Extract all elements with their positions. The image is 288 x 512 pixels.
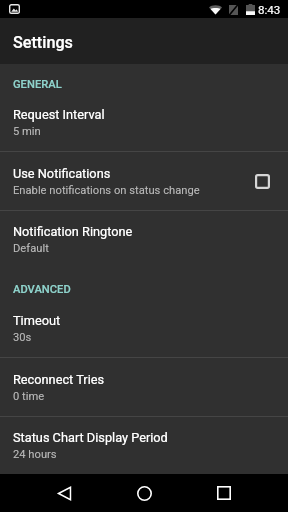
staticText: Notification Ringtone — [13, 224, 133, 239]
button[interactable]: Settings — [0, 18, 288, 64]
staticText: 30s — [13, 331, 32, 344]
staticText: Settings — [13, 33, 73, 52]
staticText: Default — [13, 242, 49, 255]
button[interactable]: Timeout — [0, 298, 288, 358]
staticText: Enable notifications on status change — [13, 184, 200, 197]
button[interactable]: Use Notifications toggle — [249, 169, 275, 195]
staticText: 8:43 — [258, 3, 281, 17]
button[interactable]: Reconnect Tries — [0, 358, 288, 417]
staticText: 5 min — [13, 125, 41, 138]
staticText: ADVANCED — [13, 283, 71, 296]
button[interactable]: Back — [32, 474, 96, 512]
button[interactable]: Use Notifications — [0, 152, 288, 211]
staticText: Reconnect Tries — [13, 372, 105, 387]
button[interactable]: Request Interval — [0, 93, 288, 152]
staticText: Request Interval — [13, 107, 105, 122]
button[interactable]: Status Chart Display Period — [0, 416, 288, 474]
staticText: 24 hours — [13, 448, 57, 461]
staticText: 0 time — [13, 390, 45, 403]
staticText: Status Chart Display Period — [13, 430, 168, 445]
other: Screenshot notification — [9, 4, 20, 14]
staticText: Timeout — [13, 313, 61, 328]
staticText: Use Notifications — [13, 166, 111, 181]
button[interactable]: Recent apps — [192, 474, 256, 512]
button[interactable]: Home — [112, 474, 176, 512]
button[interactable]: Notification Ringtone — [0, 210, 288, 269]
staticText: GENERAL — [13, 78, 62, 91]
